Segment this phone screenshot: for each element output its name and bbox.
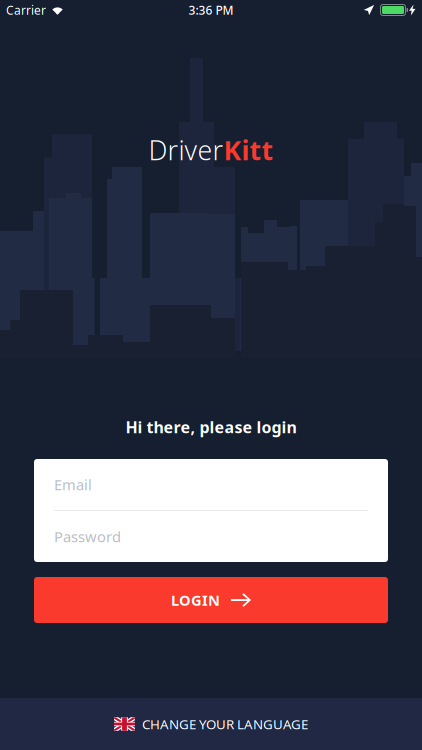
staticText: LOGIN xyxy=(171,590,220,610)
staticText: Email xyxy=(54,475,92,494)
staticText: Kitt xyxy=(223,132,273,168)
staticText: Carrier xyxy=(6,2,46,18)
staticText: CHANGE YOUR LANGUAGE xyxy=(142,715,308,733)
staticText: 3:36 PM xyxy=(188,2,233,18)
button[interactable]: LOGIN xyxy=(34,577,388,623)
button[interactable]: CHANGE YOUR LANGUAGE xyxy=(0,698,422,750)
staticText: Driver xyxy=(148,132,223,168)
staticText: Hi there, please login xyxy=(125,416,296,438)
staticText: Password xyxy=(54,527,121,546)
